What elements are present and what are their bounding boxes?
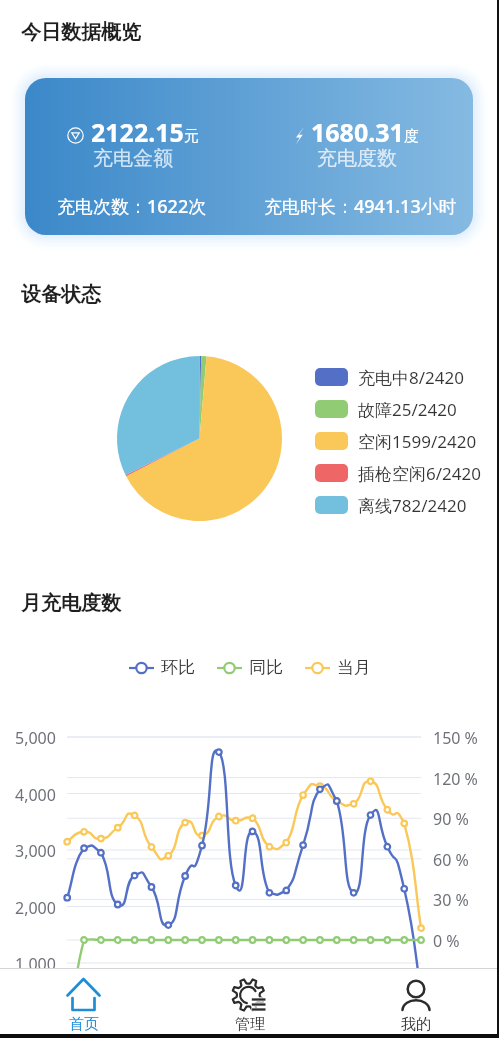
staticText: 0 % — [433, 930, 460, 952]
staticText: 60 % — [433, 849, 469, 871]
staticText: 元 — [184, 127, 199, 146]
button[interactable]: 故障25/2420 — [315, 393, 457, 425]
button[interactable]: 环比 — [129, 657, 195, 678]
staticText: 故障25/2420 — [358, 398, 457, 421]
button[interactable]: 当月 — [305, 657, 371, 678]
staticText: 月充电度数 — [21, 591, 121, 616]
button[interactable]: 2122.15 — [25, 78, 473, 235]
staticText: 我的 — [401, 1015, 431, 1034]
staticText: 充电中8/2420 — [358, 366, 464, 389]
staticText: 150 % — [433, 727, 478, 749]
staticText: 空闲1599/2420 — [358, 430, 477, 453]
staticText: 离线782/2420 — [358, 494, 467, 517]
button[interactable]: 首页 — [0, 968, 167, 1038]
button[interactable]: 我的 — [333, 968, 499, 1038]
staticText: 环比 — [161, 657, 195, 678]
staticText: 1,000 — [15, 953, 56, 975]
button[interactable]: 同比 — [217, 657, 283, 678]
staticText: 当月 — [337, 657, 371, 678]
staticText: 2,000 — [15, 897, 56, 919]
staticText: 同比 — [249, 657, 283, 678]
staticText: 5,000 — [15, 727, 56, 749]
staticText: 90 % — [433, 808, 469, 830]
button[interactable]: 插枪空闲6/2420 — [315, 457, 481, 489]
button[interactable]: 充电中8/2420 — [315, 361, 464, 393]
staticText: 充电金额 — [93, 146, 173, 171]
staticText: 3,000 — [15, 840, 56, 862]
staticText: 插枪空闲6/2420 — [358, 462, 481, 485]
staticText: 充电次数：1622次 — [57, 194, 207, 219]
staticText: 30 % — [433, 889, 469, 911]
staticText: 120 % — [433, 768, 478, 790]
staticText: 管理 — [235, 1015, 265, 1034]
staticText: 4,000 — [15, 784, 56, 806]
button[interactable]: 管理 — [167, 968, 333, 1038]
button[interactable]: 空闲1599/2420 — [315, 425, 477, 457]
staticText: 设备状态 — [21, 282, 101, 307]
staticText: 2122.15 — [91, 115, 184, 149]
staticText: 度 — [404, 127, 419, 146]
button[interactable]: 离线782/2420 — [315, 489, 467, 521]
staticText: 充电度数 — [317, 146, 397, 171]
staticText: 充电时长：4941.13小时 — [264, 194, 457, 219]
staticText: 首页 — [69, 1015, 99, 1034]
staticText: 1680.31 — [311, 115, 404, 149]
staticText: 今日数据概览 — [21, 20, 141, 45]
